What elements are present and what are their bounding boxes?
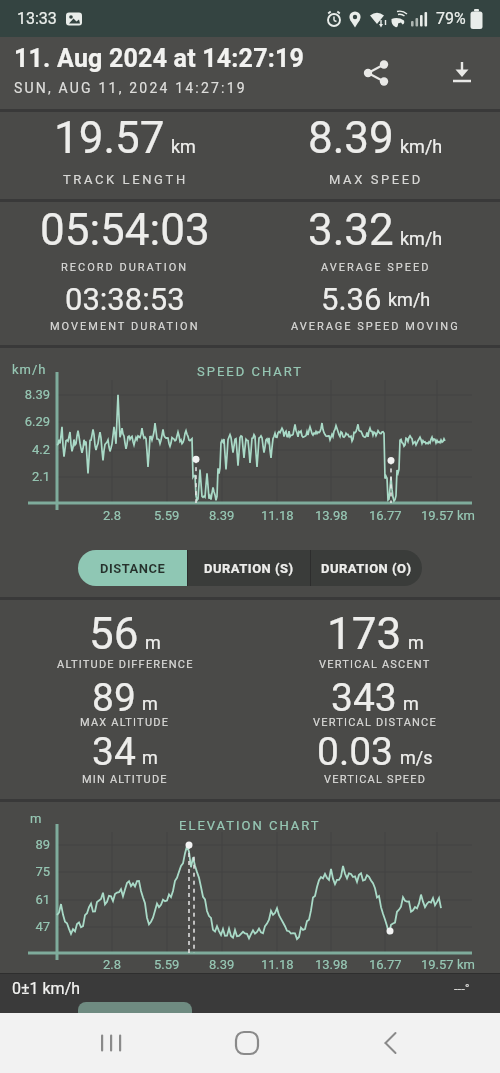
staticText: 8.39 [308,112,394,164]
staticText: m [142,747,158,768]
staticText: 8.39 [209,957,235,972]
staticText: km/h [388,289,431,310]
staticText: 89 [8,837,50,852]
staticText: DISTANCE [100,561,166,576]
button[interactable]: DURATION (S) [188,550,310,586]
button[interactable] [78,1002,192,1013]
staticText: 89 [92,675,136,721]
staticText: 19.57 [54,112,165,164]
staticText: 16.77 [369,957,402,972]
staticText: 5.36 [321,281,382,317]
button[interactable] [86,1025,134,1061]
staticText: SUN, AUG 11, 2024 14:27:19 [14,80,247,96]
staticText: m [142,693,158,714]
staticText: MOVEMENT DURATION [50,320,200,333]
staticText: 11.18 [261,508,294,523]
staticText: 16.77 [369,508,402,523]
staticText: 6.29 [8,414,50,429]
staticText: 2.8 [103,957,122,972]
staticText: 2.8 [103,508,122,523]
staticText: km [171,136,196,157]
staticText: ELEVATION CHART [179,818,321,833]
staticText: 5.59 [154,508,180,523]
staticText: m [30,811,43,826]
staticText: 75 [8,864,50,879]
staticText: AVERAGE SPEED MOVING [291,320,460,333]
staticText: 56 [89,608,139,660]
button[interactable] [366,1025,414,1061]
staticText: ALTITUDE DIFFERENCE [57,658,194,671]
staticText: TRACK LENGTH [63,172,188,187]
staticText: DURATION (O) [321,561,412,576]
staticText: VERTICAL SPEED [324,773,427,786]
staticText: MIN ALTITUDE [82,773,168,786]
staticText: 3.32 [308,204,394,256]
staticText: 13.98 [315,508,348,523]
staticText: 2.1 [8,469,50,484]
staticText: 13:33 [17,9,57,28]
staticText: MAX SPEED [329,172,423,187]
staticText: 8.39 [209,508,235,523]
staticText: SPEED CHART [197,364,304,379]
staticText: ---° [454,981,470,996]
staticText: AVERAGE SPEED [321,261,431,274]
staticText: 61 [8,892,50,907]
staticText: 0.03 [317,729,394,775]
staticText: 03:38:53 [65,281,185,317]
staticText: 173 [327,608,402,660]
button[interactable] [223,1025,271,1061]
button[interactable]: DURATION (O) [311,550,422,586]
staticText: 13.98 [315,957,348,972]
staticText: m [403,693,419,714]
staticText: 05:54:03 [40,204,210,256]
staticText: km [457,508,475,523]
staticText: 4.2 [8,442,50,457]
staticText: km/h [400,136,443,157]
staticText: 8.39 [8,387,50,402]
button[interactable] [356,53,396,93]
staticText: VERTICAL ASCENT [319,658,431,671]
staticText: MAX ALTITUDE [80,716,170,729]
staticText: 11.18 [261,957,294,972]
button[interactable] [442,53,482,93]
staticText: 19.57 [421,957,454,972]
staticText: m/s [400,747,433,768]
staticText: 79% [436,9,466,28]
staticText: 47 [8,919,50,934]
staticText: m [408,632,424,653]
staticText: m [145,632,161,653]
staticText: 343 [331,675,397,721]
staticText: 0±1 km/h [12,979,81,998]
staticText: DURATION (S) [204,561,294,576]
staticText: km [457,957,475,972]
button[interactable]: DISTANCE [78,550,187,586]
staticText: 5.59 [154,957,180,972]
staticText: VERTICAL DISTANCE [313,716,437,729]
staticText: km/h [400,228,443,249]
staticText: 34 [92,729,136,775]
staticText: 11. Aug 2024 at 14:27:19 [14,44,305,73]
staticText: 19.57 [421,508,454,523]
staticText: RECORD DURATION [61,261,189,274]
staticText: km/h [12,362,47,377]
